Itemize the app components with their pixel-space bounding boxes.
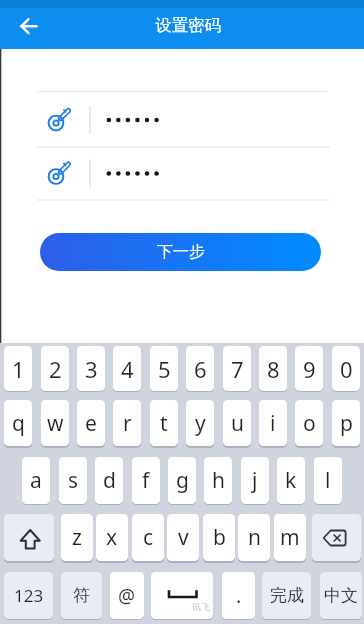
- button[interactable]: d: [95, 457, 123, 504]
- staticText: v: [178, 523, 189, 552]
- button[interactable]: 9: [295, 346, 323, 391]
- staticText: u: [231, 409, 244, 438]
- button[interactable]: 符: [61, 572, 102, 619]
- button[interactable]: n: [238, 514, 270, 561]
- button[interactable]: j: [241, 457, 269, 504]
- button[interactable]: .: [222, 572, 255, 619]
- button[interactable]: 中文: [320, 572, 362, 619]
- staticText: b: [213, 523, 226, 552]
- button[interactable]: s: [59, 457, 87, 504]
- staticText: 下一步: [157, 242, 205, 262]
- button[interactable]: p: [332, 400, 360, 446]
- button[interactable]: 2: [41, 346, 69, 391]
- button[interactable]: w: [41, 400, 69, 446]
- button[interactable]: [151, 572, 213, 619]
- staticText: @: [118, 583, 136, 609]
- button[interactable]: f: [132, 457, 160, 504]
- button[interactable]: 8: [259, 346, 287, 391]
- button[interactable]: e: [77, 400, 105, 446]
- staticText: s: [68, 466, 79, 495]
- staticText: 123: [14, 584, 44, 607]
- staticText: y: [195, 409, 206, 438]
- staticText: 完成: [270, 585, 304, 606]
- button[interactable]: 7: [223, 346, 251, 391]
- button[interactable]: i: [259, 400, 287, 446]
- button[interactable]: t: [150, 400, 178, 446]
- staticText: 符: [73, 585, 90, 606]
- button[interactable]: [13, 12, 41, 40]
- staticText: 8: [267, 354, 280, 384]
- staticText: x: [106, 523, 118, 552]
- staticText: k: [285, 466, 297, 495]
- staticText: 设置密码: [155, 15, 221, 36]
- button[interactable]: q: [4, 400, 32, 446]
- staticText: 7: [231, 354, 244, 384]
- button[interactable]: [37, 147, 327, 200]
- button[interactable]: @: [110, 572, 144, 619]
- button[interactable]: 4: [113, 346, 141, 391]
- staticText: 讯飞: [192, 601, 210, 612]
- staticText: w: [47, 409, 64, 438]
- button[interactable]: 3: [77, 346, 105, 391]
- staticText: j: [252, 466, 258, 495]
- staticText: i: [270, 409, 276, 438]
- staticText: 1: [12, 354, 25, 384]
- button[interactable]: 完成: [262, 572, 311, 619]
- button[interactable]: [4, 514, 54, 561]
- button[interactable]: z: [61, 514, 93, 561]
- staticText: o: [303, 409, 316, 438]
- staticText: 中文: [324, 585, 358, 606]
- staticText: 3: [85, 354, 98, 384]
- button[interactable]: l: [314, 457, 342, 504]
- staticText: t: [160, 409, 168, 438]
- staticText: a: [30, 466, 42, 495]
- button[interactable]: h: [204, 457, 232, 504]
- staticText: f: [142, 466, 150, 495]
- button[interactable]: 123: [4, 572, 53, 619]
- button[interactable]: u: [223, 400, 251, 446]
- button[interactable]: c: [132, 514, 164, 561]
- staticText: c: [143, 523, 154, 552]
- staticText: 9: [303, 354, 316, 384]
- button[interactable]: a: [22, 457, 50, 504]
- button[interactable]: 1: [4, 346, 32, 391]
- button[interactable]: m: [274, 514, 306, 561]
- staticText: z: [72, 523, 82, 552]
- staticText: 0: [340, 354, 353, 384]
- button[interactable]: [312, 514, 361, 561]
- staticText: m: [280, 523, 300, 552]
- button[interactable]: [37, 92, 327, 147]
- button[interactable]: 5: [150, 346, 178, 391]
- staticText: g: [176, 466, 189, 495]
- staticText: .: [236, 582, 242, 609]
- staticText: l: [325, 466, 331, 495]
- staticText: 2: [49, 354, 62, 384]
- button[interactable]: o: [295, 400, 323, 446]
- button[interactable]: 下一步: [40, 233, 321, 271]
- button[interactable]: g: [168, 457, 196, 504]
- button[interactable]: r: [113, 400, 141, 446]
- staticText: q: [12, 409, 25, 438]
- staticText: h: [212, 466, 225, 495]
- button[interactable]: 6: [186, 346, 214, 391]
- button[interactable]: k: [277, 457, 305, 504]
- button[interactable]: y: [186, 400, 214, 446]
- staticText: 5: [158, 354, 171, 384]
- button[interactable]: 0: [332, 346, 360, 391]
- button[interactable]: x: [96, 514, 128, 561]
- staticText: 4: [121, 354, 134, 384]
- staticText: e: [85, 409, 97, 438]
- button[interactable]: b: [203, 514, 235, 561]
- staticText: d: [103, 466, 116, 495]
- staticText: r: [123, 409, 132, 438]
- staticText: p: [340, 409, 353, 438]
- button[interactable]: v: [167, 514, 199, 561]
- staticText: n: [248, 523, 261, 552]
- staticText: 6: [194, 354, 207, 384]
